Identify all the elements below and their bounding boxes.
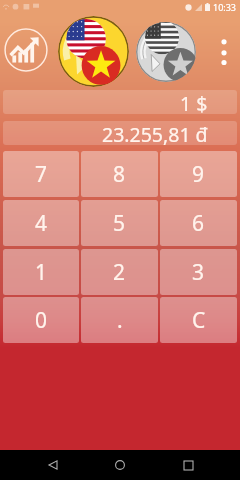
button[interactable]: Back <box>38 450 68 480</box>
staticText: 1 <box>35 258 48 287</box>
staticText: 1 $ <box>180 90 208 114</box>
staticText: 9 <box>192 160 205 189</box>
staticText: 10:33 <box>213 1 237 13</box>
button[interactable]: 7 <box>3 151 79 197</box>
button[interactable]: Home <box>105 450 135 480</box>
button[interactable]: 0 <box>3 297 79 343</box>
button[interactable]: 4 <box>3 200 79 246</box>
staticText: 5 <box>113 209 126 238</box>
staticText: 6 <box>192 209 205 238</box>
button[interactable]: 8 <box>81 151 158 197</box>
button[interactable]: More options <box>212 28 236 76</box>
button[interactable]: C <box>160 297 237 343</box>
staticText: 4 <box>35 209 48 238</box>
button[interactable]: US dollar to Vietnam dong <box>58 16 129 87</box>
button[interactable]: 1 <box>3 249 79 295</box>
button[interactable]: 1 $ <box>3 90 237 114</box>
staticText: 3 <box>192 258 205 287</box>
button[interactable]: 5 <box>81 200 158 246</box>
button[interactable]: . <box>81 297 158 343</box>
button[interactable]: Other currency pair <box>136 22 196 82</box>
staticText: C <box>192 306 206 335</box>
button[interactable]: 3 <box>160 249 237 295</box>
button[interactable]: Exchange rate chart <box>3 27 49 73</box>
staticText: 23.255,81 đ <box>102 121 208 145</box>
staticText: 8 <box>113 160 126 189</box>
staticText: 7 <box>35 160 48 189</box>
button[interactable]: 6 <box>160 200 237 246</box>
button[interactable]: Recent apps <box>173 450 203 480</box>
staticText: 2 <box>113 258 126 287</box>
staticText: 0 <box>35 306 48 335</box>
staticText: . <box>117 306 123 335</box>
button[interactable]: 9 <box>160 151 237 197</box>
button[interactable]: 23.255,81 đ <box>3 121 237 145</box>
button[interactable]: 2 <box>81 249 158 295</box>
